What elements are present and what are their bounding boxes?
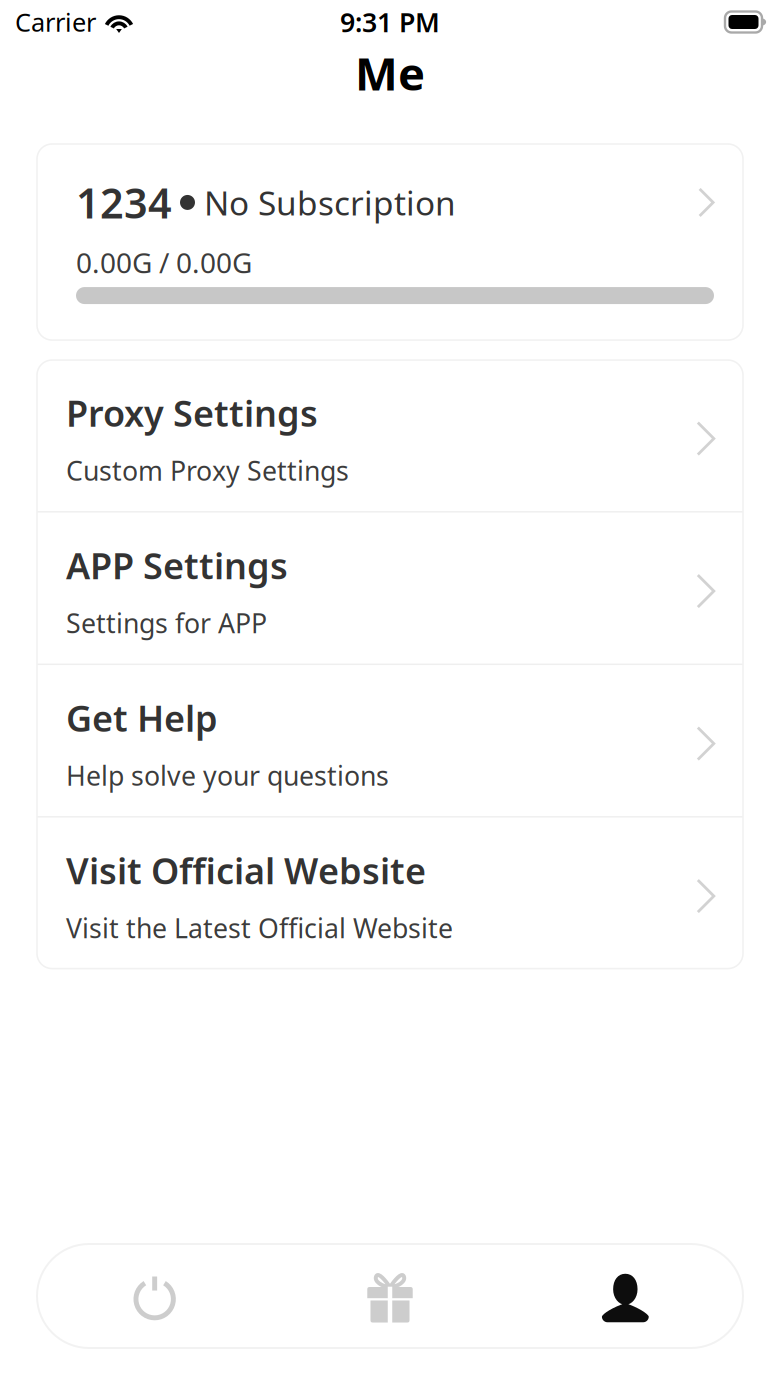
button[interactable]: Proxy Settings	[37, 360, 743, 511]
button[interactable]: Me	[508, 1244, 743, 1348]
staticText: APP Settings	[66, 541, 288, 589]
button[interactable]: APP Settings	[37, 513, 743, 664]
button[interactable]: Connect	[37, 1244, 272, 1348]
staticText: 0.00G / 0.00G	[76, 244, 252, 281]
staticText: No Subscription	[204, 180, 456, 225]
button[interactable]: Rewards	[272, 1244, 508, 1348]
staticText: Visit Official Website	[66, 846, 426, 894]
staticText: Proxy Settings	[66, 389, 318, 437]
staticText: 9:31 PM	[340, 4, 440, 40]
button[interactable]: Get Help	[37, 665, 743, 816]
staticText: Custom Proxy Settings	[66, 453, 349, 488]
button[interactable]: 1234	[37, 144, 743, 340]
staticText: 1234	[76, 175, 172, 230]
staticText: Help solve your questions	[66, 758, 389, 793]
staticText: Me	[355, 43, 425, 103]
staticText: Carrier	[15, 5, 96, 39]
button[interactable]: Visit Official Website	[37, 818, 743, 969]
staticText: Visit the Latest Official Website	[66, 910, 453, 946]
staticText: Settings for APP	[66, 605, 267, 641]
staticText: Get Help	[66, 694, 218, 742]
